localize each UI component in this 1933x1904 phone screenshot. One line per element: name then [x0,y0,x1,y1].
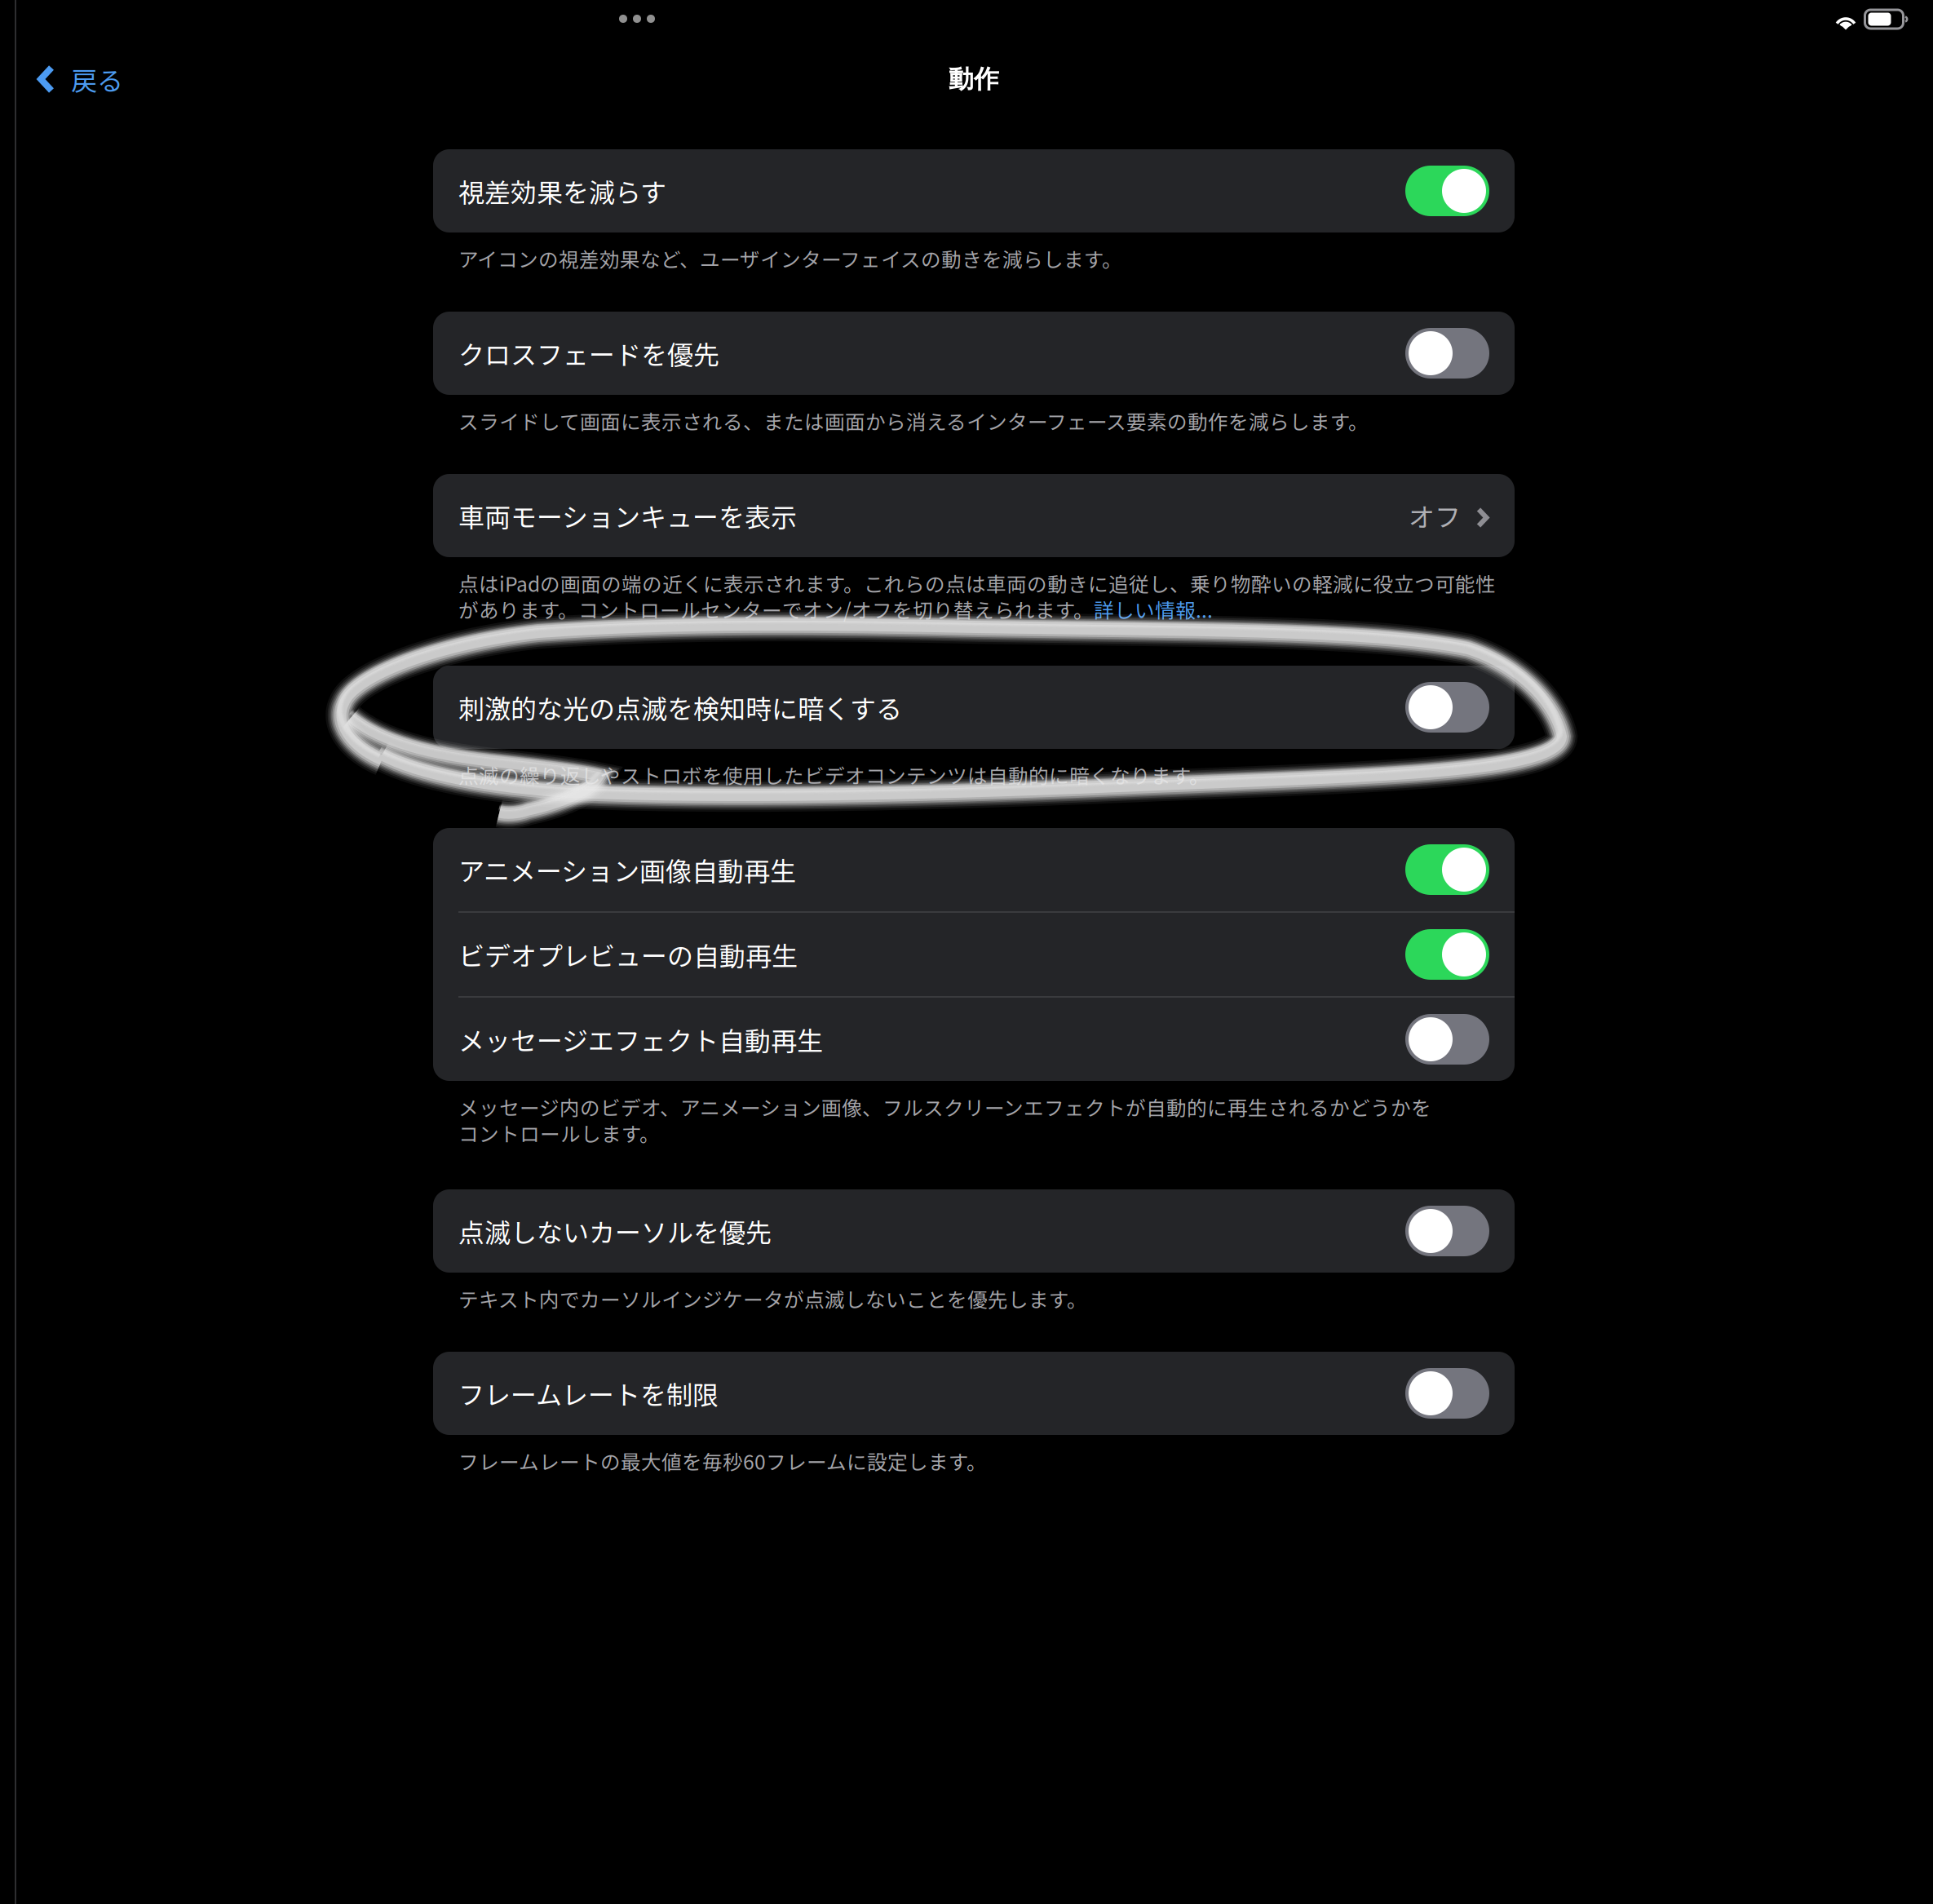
staticText: 詳しい情報... [1094,595,1213,624]
button[interactable]: 点滅しないカーソルを優先 [433,1189,1515,1273]
staticText: アニメーション画像自動再生 [458,851,796,888]
staticText: スライドして画面に表示される、または画面から消えるインターフェース要素の動作を減… [458,406,1369,435]
staticText: 点滅の繰り返しやストロボを使用したビデオコンテンツは自動的に暗くなります。 [458,760,1210,789]
staticText: があります。コントロールセンターでオン/オフを切り替えられます。 [458,595,1094,624]
button[interactable]: アニメーション画像自動再生 [433,828,1515,911]
staticText: 動作 [949,63,999,95]
staticText: コントロールします。 [458,1118,660,1147]
staticText: アイコンの視差効果など、ユーザインターフェイスの動きを減らします。 [458,244,1122,273]
staticText: オフ [1409,497,1461,534]
staticText: 視差効果を減らす [458,172,666,210]
staticText: ビデオプレビューの自動再生 [458,936,798,973]
button[interactable]: 戻る [17,46,143,112]
staticText: フレームレートを制限 [458,1374,719,1412]
staticText: クロスフェードを優先 [458,334,719,372]
staticText: 刺激的な光の点滅を検知時に暗くする [458,688,902,726]
staticText: 点はiPadの画面の端の近くに表示されます。これらの点は車両の動きに追従し、乗り… [458,569,1496,598]
staticText: テキスト内でカーソルインジケータが点滅しないことを優先します。 [458,1284,1087,1313]
staticText: フレームレートの最大値を毎秒60フレームに設定します。 [458,1446,987,1475]
button[interactable]: クロスフェードを優先 [433,312,1515,395]
staticText: 点滅しないカーソルを優先 [458,1212,772,1250]
button[interactable]: メッセージエフェクト自動再生 [433,998,1515,1081]
staticText: メッセージ内のビデオ、アニメーション画像、フルスクリーンエフェクトが自動的に再生… [458,1092,1431,1121]
button[interactable]: 刺激的な光の点滅を検知時に暗くする [433,666,1515,749]
staticText: 車両モーションキューを表示 [458,497,797,534]
button[interactable]: 詳しい情報... [1094,595,1213,624]
button[interactable]: 車両モーションキューを表示 [433,474,1515,557]
staticText: メッセージエフェクト自動再生 [458,1020,823,1058]
button[interactable]: 視差効果を減らす [433,149,1515,232]
button[interactable]: ビデオプレビューの自動再生 [433,913,1515,996]
staticText: 戻る [71,60,123,98]
button[interactable]: フレームレートを制限 [433,1352,1515,1435]
